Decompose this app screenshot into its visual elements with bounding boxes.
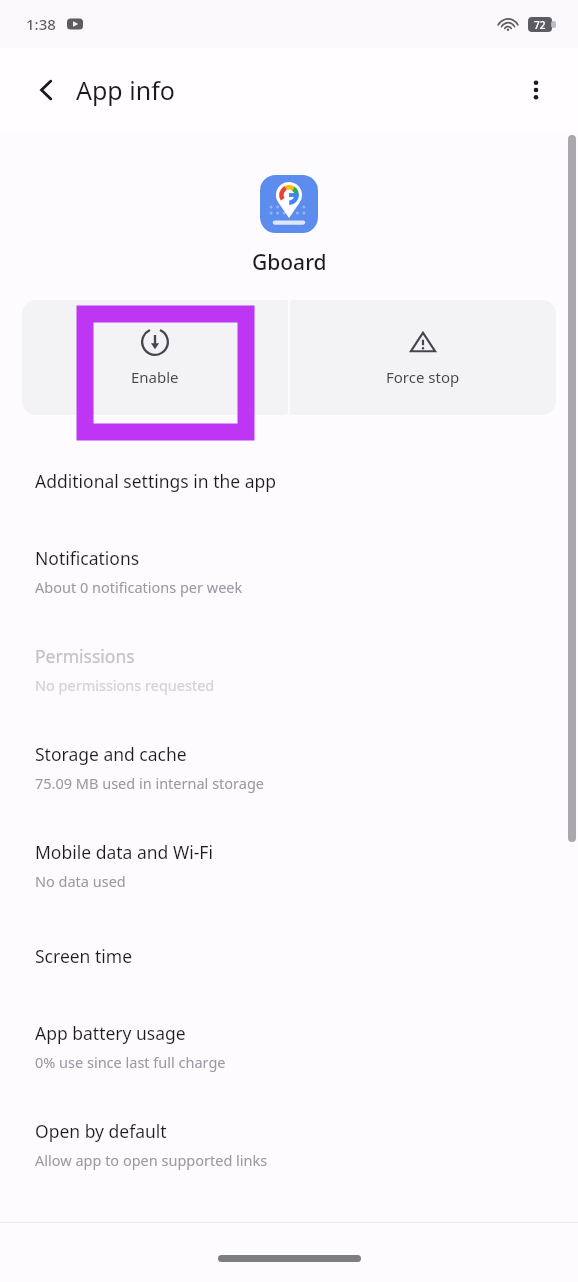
button[interactable]: More options <box>513 67 559 113</box>
staticText: 75.09 MB used in internal storage <box>35 773 265 793</box>
staticText: 1:38 <box>26 14 56 34</box>
staticText: 72 <box>534 18 546 32</box>
staticText: About 0 notifications per week <box>35 577 243 597</box>
staticText: Storage and cache <box>35 742 187 766</box>
staticText: Force stop <box>386 367 460 387</box>
button[interactable]: Force stop <box>290 300 556 415</box>
button[interactable]: Storage and cache <box>0 718 578 816</box>
staticText: Enable <box>131 367 179 387</box>
staticText: App info <box>76 73 175 107</box>
staticText: Notifications <box>35 546 140 570</box>
staticText: No permissions requested <box>35 675 215 695</box>
button[interactable]: Notifications <box>0 522 578 620</box>
staticText: Permissions <box>35 644 135 668</box>
button[interactable]: Enable <box>22 300 288 415</box>
staticText: 0% use since last full charge <box>35 1052 226 1072</box>
button[interactable]: Back <box>26 69 68 111</box>
staticText: Screen time <box>35 944 133 968</box>
staticText: Mobile data and Wi-Fi <box>35 840 213 864</box>
button[interactable]: Mobile data and Wi-Fi <box>0 816 578 914</box>
button[interactable]: App battery usage <box>0 997 578 1095</box>
button[interactable]: Permissions <box>0 620 578 718</box>
staticText: No data used <box>35 871 126 891</box>
staticText: Open by default <box>35 1119 167 1143</box>
staticText: Gboard <box>252 248 327 277</box>
staticText: Allow app to open supported links <box>35 1150 268 1170</box>
staticText: App battery usage <box>35 1021 186 1045</box>
button[interactable]: Open by default <box>0 1095 578 1193</box>
button[interactable]: Additional settings in the app <box>0 439 578 522</box>
staticText: Additional settings in the app <box>35 469 277 493</box>
button[interactable]: Screen time <box>0 914 578 997</box>
